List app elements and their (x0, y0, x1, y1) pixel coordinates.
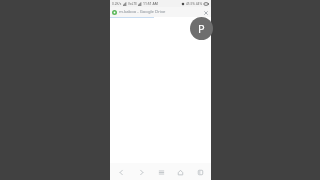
staticText: P (198, 21, 205, 36)
staticText: 11:51 AM (143, 1, 158, 6)
button[interactable]: Back (113, 164, 129, 180)
staticText: VoLTE (128, 2, 137, 6)
staticText: 45.5% 44% (186, 2, 203, 6)
staticText: m.kaboo - Google Drive (119, 9, 202, 15)
button[interactable]: Profile P (190, 17, 213, 40)
button[interactable]: Home (172, 164, 188, 180)
button[interactable]: Menu (153, 164, 169, 180)
staticText: 0.2K/s (112, 2, 122, 6)
button[interactable]: Tabs (192, 164, 208, 180)
button[interactable]: Forward (133, 164, 149, 180)
button[interactable]: m.kaboo - Google Drive (110, 7, 211, 17)
button[interactable]: Stop loading (202, 9, 209, 16)
